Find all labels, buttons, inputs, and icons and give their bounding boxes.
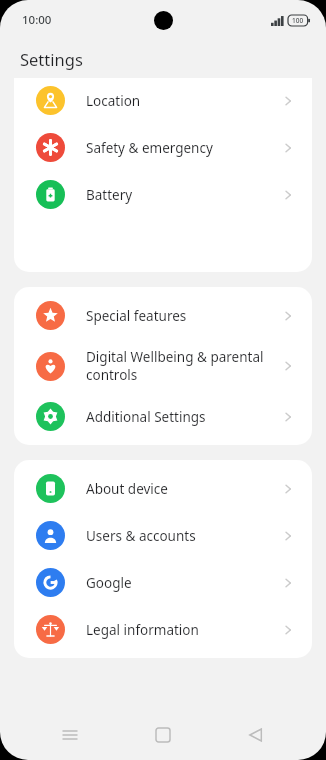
staticText: 100	[292, 16, 304, 25]
staticText: Digital Wellbeing & parental controls	[86, 348, 272, 384]
button[interactable]: Additional Settings	[14, 393, 312, 440]
button[interactable]: Safety & emergency	[14, 124, 312, 171]
staticText: Location	[86, 92, 272, 110]
staticText: Google	[86, 574, 272, 592]
button[interactable]: Legal information	[14, 606, 312, 653]
staticText: Users & accounts	[86, 527, 272, 545]
staticText: Safety & emergency	[86, 139, 272, 157]
button[interactable]: About device	[14, 465, 312, 512]
staticText: Additional Settings	[86, 408, 272, 426]
staticText: About device	[86, 480, 272, 498]
button[interactable]: Users & accounts	[14, 512, 312, 559]
button[interactable]: Digital Wellbeing & parental controls	[14, 339, 312, 393]
staticText: 10:00	[22, 12, 52, 28]
staticText: Settings	[20, 48, 83, 70]
button[interactable]: Location	[14, 78, 312, 124]
staticText: Battery	[86, 186, 272, 204]
button[interactable]: Home	[140, 712, 186, 758]
staticText: Legal information	[86, 621, 272, 639]
button[interactable]: Special features	[14, 292, 312, 339]
staticText: Special features	[86, 307, 272, 325]
button[interactable]: Battery	[14, 171, 312, 218]
button[interactable]: Back	[233, 712, 279, 758]
button[interactable]: Google	[14, 559, 312, 606]
button[interactable]: Recent apps	[47, 712, 93, 758]
